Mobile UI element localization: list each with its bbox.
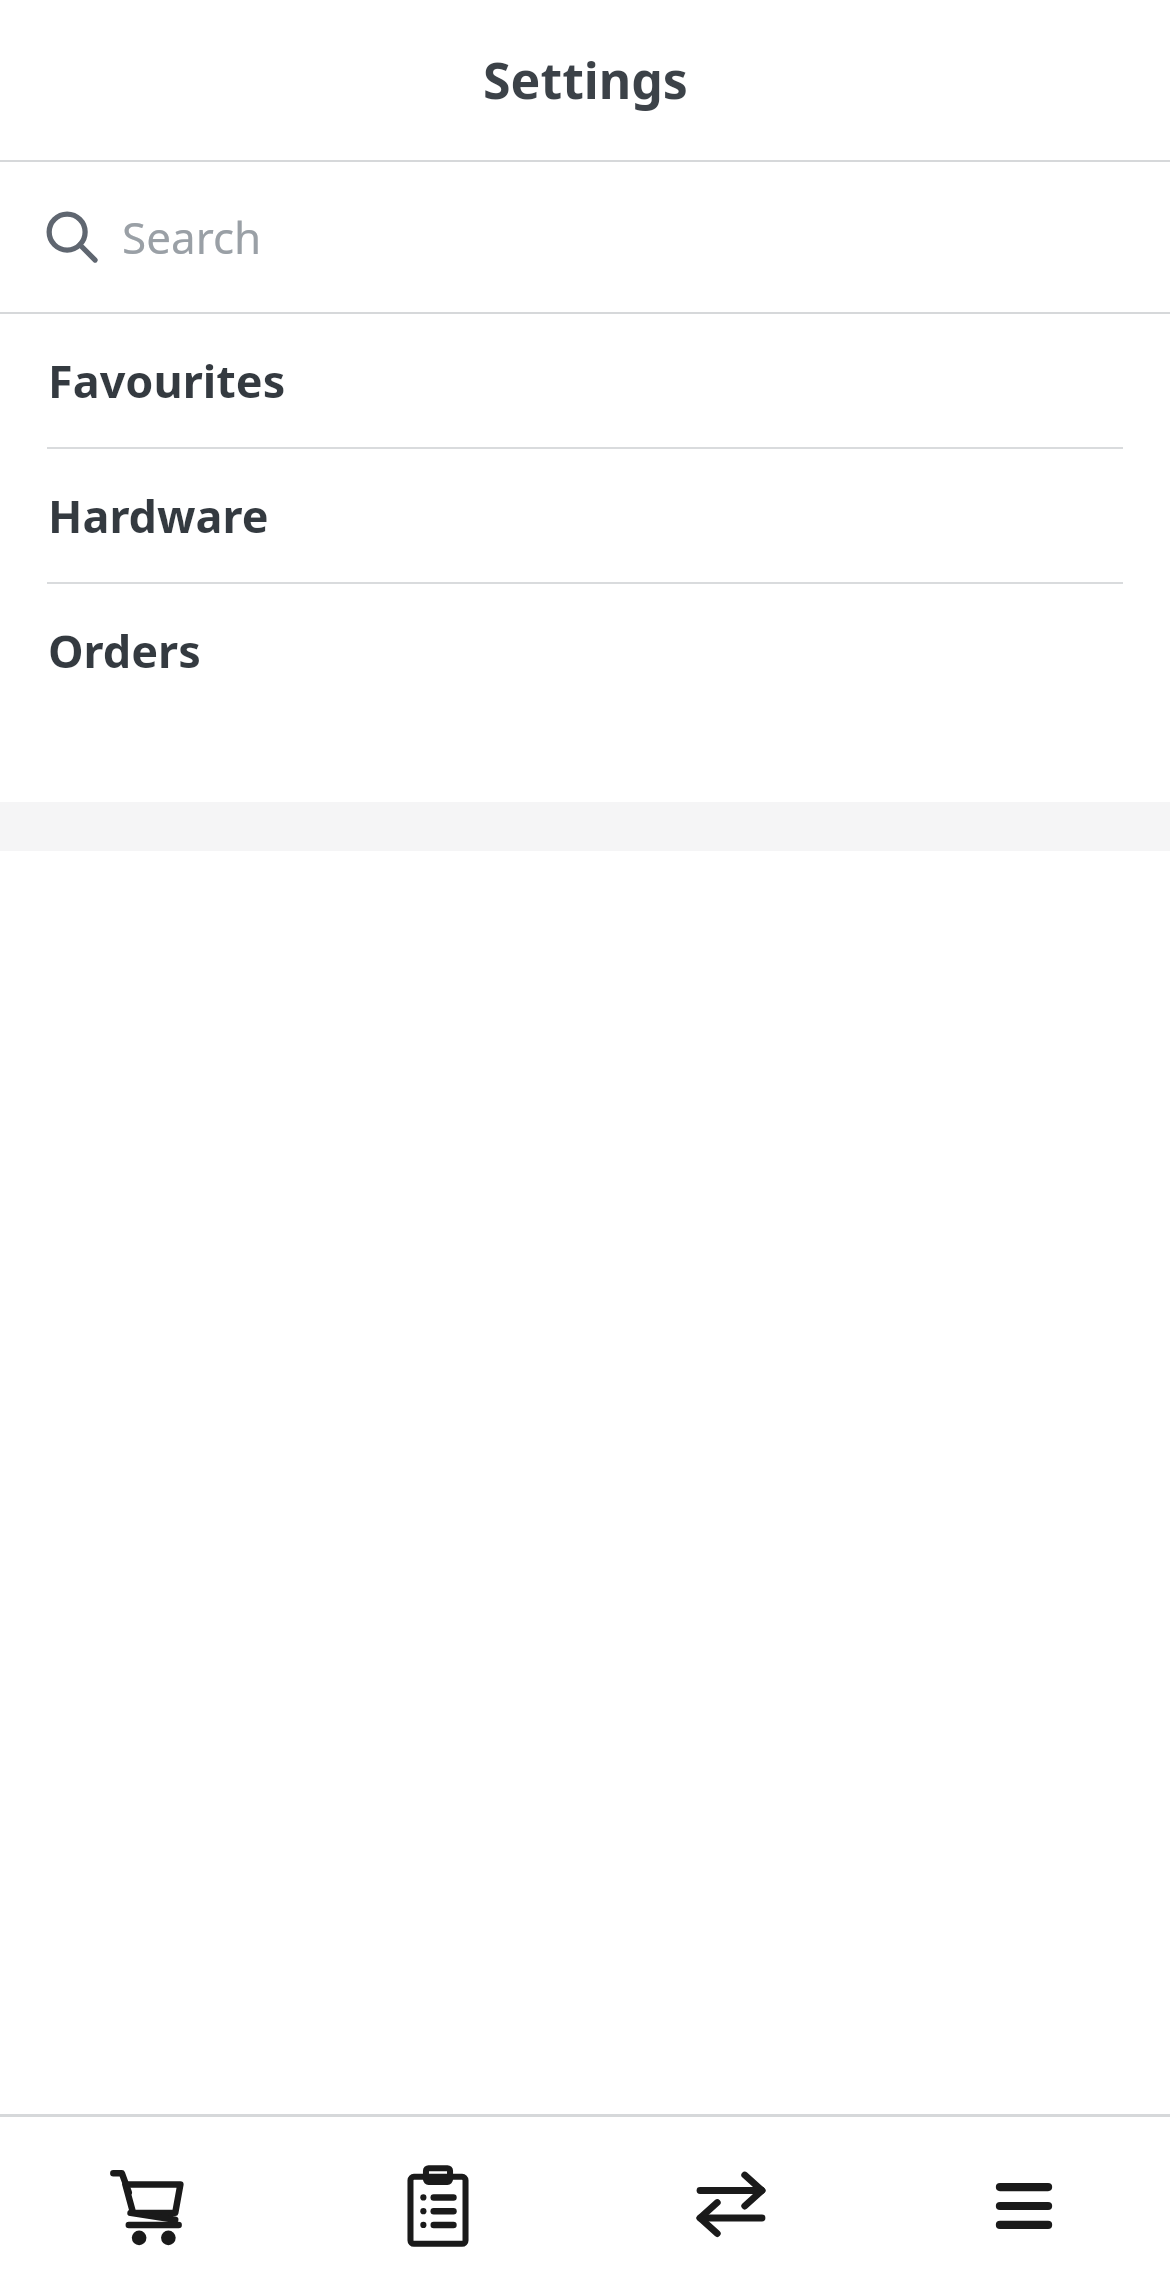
- button[interactable]: Menu: [877, 2117, 1170, 2294]
- button[interactable]: Search: [0, 162, 1170, 312]
- button[interactable]: Favourites: [0, 314, 1170, 447]
- staticText: Hardware: [48, 485, 269, 546]
- button[interactable]: Orders list: [292, 2117, 584, 2294]
- button[interactable]: Cart: [0, 2117, 292, 2294]
- staticText: Favourites: [48, 350, 286, 411]
- staticText: Orders: [48, 620, 201, 681]
- staticText: Settings: [483, 46, 688, 114]
- staticText: Search: [122, 207, 262, 267]
- button[interactable]: Orders: [0, 584, 1170, 717]
- button[interactable]: Hardware: [0, 449, 1170, 582]
- button[interactable]: Transfers: [584, 2117, 877, 2294]
